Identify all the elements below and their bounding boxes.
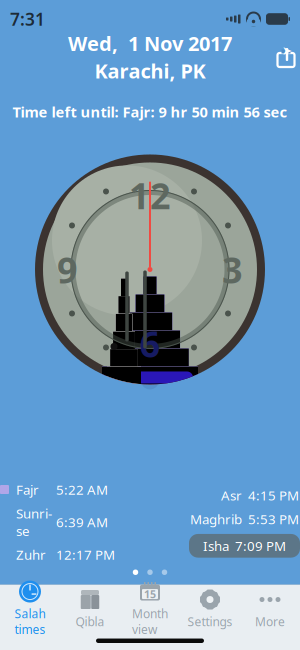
staticText: Fajr — [16, 481, 39, 498]
staticText: Isha — [203, 537, 229, 555]
staticText: 12 — [129, 171, 171, 219]
staticText: 5:53 PM — [248, 510, 299, 528]
staticText: 3 — [222, 246, 243, 293]
button[interactable]: More — [240, 586, 300, 630]
button[interactable]: Salah times — [0, 586, 60, 630]
staticText: ➤ — [282, 44, 292, 57]
staticText: 5:22 AM — [56, 481, 108, 498]
staticText: Month view — [132, 606, 168, 637]
staticText: 15 — [144, 587, 156, 601]
button[interactable]: 15 — [120, 586, 180, 630]
staticText: 9 — [57, 246, 78, 293]
staticText: 7:09 PM — [235, 537, 286, 555]
staticText: 7:31 — [10, 7, 45, 30]
staticText: 12:17 PM — [56, 546, 115, 563]
staticText: Time left until: Fajr: 9 hr 50 min 56 se… — [12, 102, 287, 121]
button[interactable]: Settings — [180, 586, 240, 630]
staticText: Qibla — [75, 613, 104, 629]
button[interactable]: Qibla — [60, 586, 120, 630]
staticText: More — [255, 613, 285, 629]
staticText: 6:39 AM — [56, 513, 108, 531]
staticText: Salah times — [14, 606, 45, 637]
staticText: Sunrise — [16, 504, 52, 540]
staticText: 6 — [139, 320, 160, 367]
staticText: Zuhr — [16, 546, 46, 563]
staticText: Settings — [187, 613, 232, 629]
staticText: Karachi, PK — [94, 57, 205, 84]
staticText: Asr — [221, 486, 242, 504]
staticText: 4:15 PM — [248, 486, 299, 504]
staticText: Maghrib — [190, 510, 242, 528]
staticText: Wed, 1 Nov 2017 — [68, 30, 232, 56]
button[interactable]: Share — [268, 39, 300, 75]
